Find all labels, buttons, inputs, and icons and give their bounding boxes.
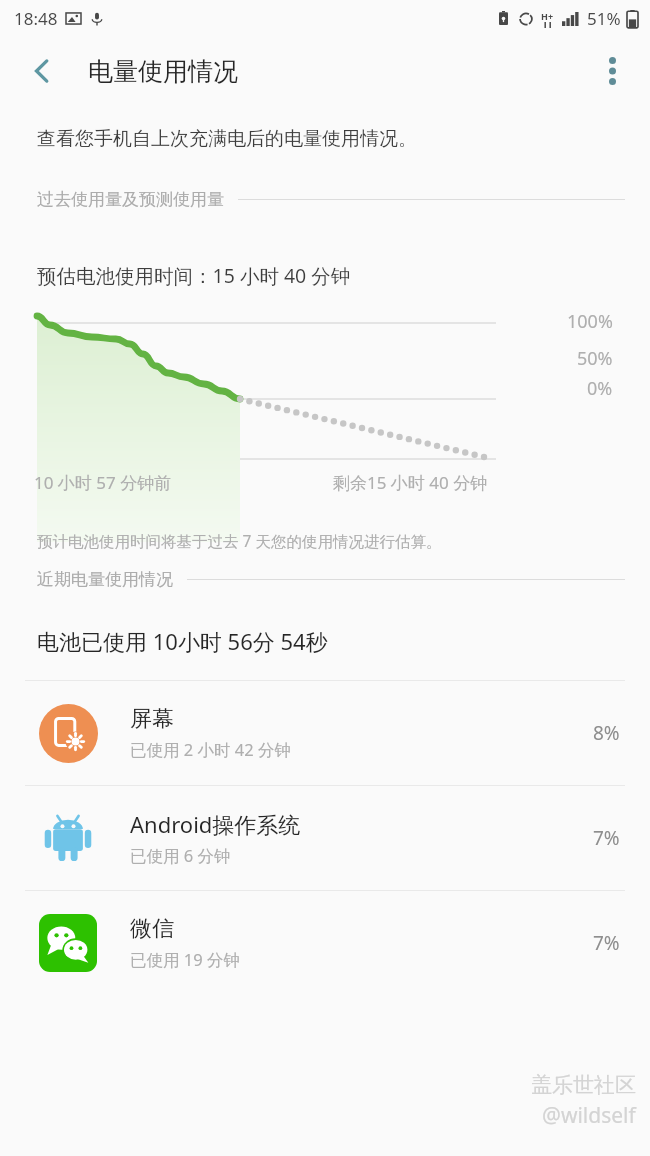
staticText: 100% xyxy=(567,309,613,334)
staticText: 剩余15 小时 40 分钟 xyxy=(333,471,488,494)
staticText: 50% xyxy=(577,346,613,371)
staticText: H+ xyxy=(541,10,554,22)
staticText: 已使用 2 小时 42 分钟 xyxy=(130,738,291,761)
staticText: 近期电量使用情况 xyxy=(37,569,173,590)
staticText: 查看您手机自上次充满电后的电量使用情况。 xyxy=(37,127,417,151)
staticText: 7% xyxy=(593,930,620,956)
staticText: 7% xyxy=(593,825,620,851)
button[interactable]: Back xyxy=(14,43,70,99)
staticText: 10 小时 57 分钟前 xyxy=(34,471,172,494)
button[interactable]: Android操作系统 xyxy=(0,786,650,890)
staticText: 微信 xyxy=(130,915,174,943)
staticText: 过去使用量及预测使用量 xyxy=(37,189,224,210)
staticText: 预估电池使用时间：15 小时 40 分钟 xyxy=(37,262,351,289)
staticText: 已使用 6 分钟 xyxy=(130,844,231,867)
staticText: 盖乐世社区 xyxy=(531,1072,636,1098)
staticText: @wildself xyxy=(542,1101,636,1130)
button[interactable]: 屏幕 xyxy=(0,681,650,785)
button[interactable]: 微信 xyxy=(0,891,650,995)
staticText: 电池已使用 10小时 56分 54秒 xyxy=(37,626,328,656)
button[interactable]: More options xyxy=(586,45,638,97)
staticText: 电量使用情况 xyxy=(88,56,238,87)
staticText: 51% xyxy=(587,7,621,30)
staticText: 屏幕 xyxy=(130,705,174,733)
staticText: 0% xyxy=(587,376,613,401)
staticText: 8% xyxy=(593,720,620,746)
staticText: 18:48 xyxy=(14,7,58,30)
staticText: 预计电池使用时间将基于过去 7 天您的使用情况进行估算。 xyxy=(37,530,442,551)
staticText: 已使用 19 分钟 xyxy=(130,948,240,971)
staticText: Android操作系统 xyxy=(130,809,301,839)
